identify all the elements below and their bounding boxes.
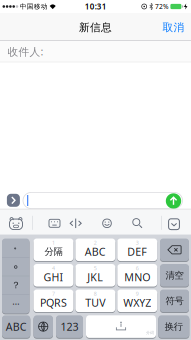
staticText: 分隔 bbox=[44, 246, 62, 257]
button[interactable]: ABC bbox=[2, 315, 30, 338]
staticText: 10:31 bbox=[85, 1, 107, 12]
button[interactable] bbox=[6, 215, 26, 233]
staticText: ABC bbox=[85, 244, 106, 259]
button[interactable] bbox=[23, 192, 182, 208]
button[interactable] bbox=[98, 214, 116, 232]
staticText: ABC bbox=[6, 319, 27, 334]
button[interactable] bbox=[7, 194, 20, 207]
button[interactable]: 2 bbox=[75, 238, 115, 261]
button[interactable]: 换行 bbox=[158, 315, 189, 338]
button[interactable]: 4 bbox=[33, 264, 73, 287]
button[interactable]: 3 bbox=[117, 238, 157, 261]
staticText: 取消 bbox=[163, 21, 185, 34]
button[interactable] bbox=[45, 214, 63, 232]
staticText: 4 bbox=[52, 265, 55, 272]
button[interactable] bbox=[166, 193, 181, 209]
staticText: GHI bbox=[43, 270, 63, 284]
button[interactable] bbox=[128, 214, 146, 232]
button[interactable]: 123 bbox=[56, 315, 83, 338]
button[interactable]: 1 bbox=[33, 238, 73, 261]
button[interactable]: 取消 bbox=[158, 14, 190, 41]
button[interactable]: 收件人: bbox=[0, 41, 191, 62]
button[interactable] bbox=[164, 215, 184, 233]
staticText: 2 bbox=[94, 239, 97, 246]
staticText: 收件人: bbox=[7, 44, 43, 58]
staticText: 中国移动 bbox=[20, 2, 48, 11]
staticText: 新信息 bbox=[79, 21, 112, 34]
staticText: 123 bbox=[60, 319, 78, 334]
staticText: JKL bbox=[87, 270, 103, 284]
button[interactable]: 9 bbox=[117, 289, 157, 312]
button[interactable]: 分词 bbox=[86, 315, 156, 338]
staticText: 换行 bbox=[165, 321, 183, 332]
button[interactable]: 8 bbox=[75, 289, 115, 312]
staticText: 8 bbox=[94, 290, 97, 297]
staticText: WXYZ bbox=[123, 295, 151, 310]
button[interactable]: 7 bbox=[33, 289, 73, 312]
staticText: 清空 bbox=[165, 270, 183, 281]
button[interactable] bbox=[33, 315, 53, 338]
staticText: 5 bbox=[94, 265, 97, 272]
button[interactable]: 符号 bbox=[160, 289, 189, 312]
button[interactable]: ？ bbox=[2, 238, 29, 313]
button[interactable]: 5 bbox=[75, 264, 115, 287]
staticText: … bbox=[12, 295, 19, 307]
staticText: PQRS bbox=[40, 295, 67, 310]
staticText: 分词 bbox=[146, 330, 154, 335]
staticText: 72% bbox=[155, 2, 169, 11]
staticText: 9 bbox=[136, 290, 139, 297]
staticText: 1 bbox=[52, 239, 55, 246]
staticText: MNO bbox=[124, 270, 150, 284]
staticText: DEF bbox=[127, 244, 147, 259]
button[interactable] bbox=[160, 238, 189, 261]
button[interactable]: 清空 bbox=[160, 264, 189, 287]
staticText: 6 bbox=[136, 265, 139, 272]
staticText: 7 bbox=[52, 290, 55, 297]
staticText: ？ bbox=[11, 279, 20, 291]
staticText: 3 bbox=[136, 239, 139, 246]
staticText: 符号 bbox=[165, 295, 183, 307]
button[interactable] bbox=[67, 214, 85, 232]
staticText: TUV bbox=[85, 295, 105, 310]
button[interactable]: 6 bbox=[117, 264, 157, 287]
